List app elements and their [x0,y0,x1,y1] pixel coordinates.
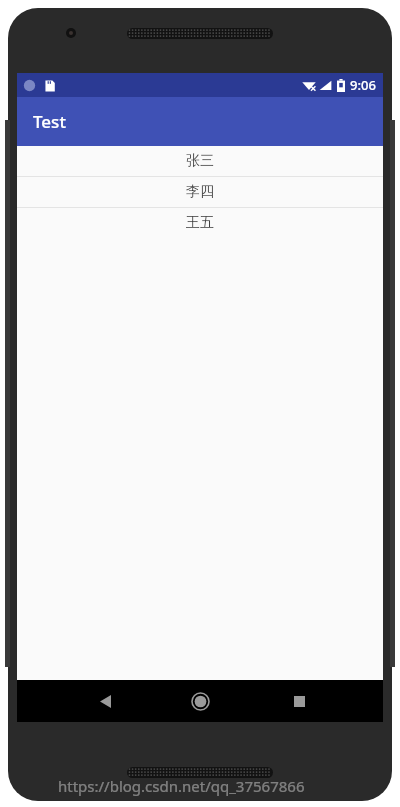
button[interactable]: Home [178,680,222,722]
button[interactable]: Back [83,680,127,722]
button[interactable]: 张三 [17,146,383,176]
staticText: 李四 [186,183,214,201]
staticText: 9:06 [350,76,376,94]
button[interactable]: 李四 [17,177,383,207]
button[interactable]: 王五 [17,208,383,238]
button[interactable]: Recents [277,680,321,722]
staticText: https://blog.csdn.net/qq_37567866 [58,776,305,796]
staticText: 张三 [186,152,214,170]
staticText: Test [33,110,66,133]
staticText: 王五 [186,214,214,232]
